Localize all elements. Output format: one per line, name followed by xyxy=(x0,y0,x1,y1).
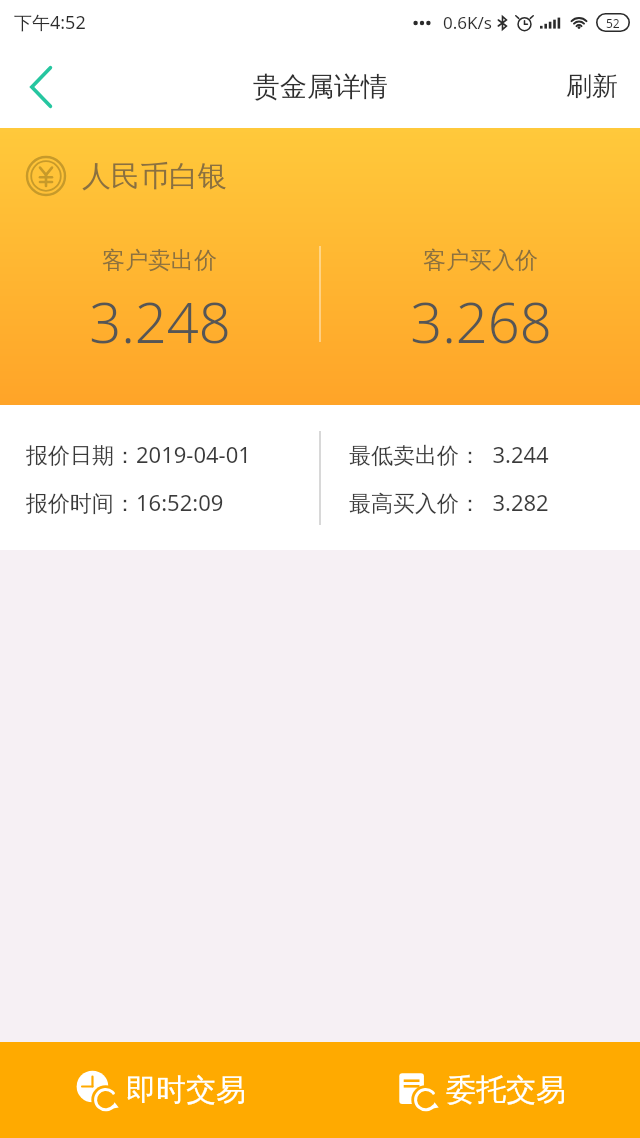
staticText: 3.268 xyxy=(410,283,552,359)
staticText: 3.248 xyxy=(89,283,231,359)
button[interactable]: Back xyxy=(0,45,84,128)
staticText: 下午4:52 xyxy=(14,10,86,35)
staticText: 最低卖出价： 3.244 xyxy=(349,439,549,469)
staticText: 人民币白银 xyxy=(82,158,227,195)
staticText: 报价时间：16:52:09 xyxy=(26,487,224,517)
button[interactable]: 委托交易 xyxy=(320,1042,640,1138)
staticText: 0.6K/s xyxy=(443,11,492,34)
staticText: 报价日期：2019-04-01 xyxy=(26,439,251,469)
staticText: 即时交易 xyxy=(126,1071,246,1109)
button[interactable]: 刷新 xyxy=(544,45,640,128)
button[interactable]: 即时交易 xyxy=(0,1042,320,1138)
staticText: 贵金属详情 xyxy=(253,70,388,104)
staticText: 最高买入价： 3.282 xyxy=(349,487,549,517)
staticText: 客户卖出价 xyxy=(102,246,217,275)
staticText: 客户买入价 xyxy=(423,246,538,275)
staticText: 刷新 xyxy=(566,70,618,103)
staticText: 52 xyxy=(606,15,620,31)
staticText: 委托交易 xyxy=(446,1071,566,1109)
